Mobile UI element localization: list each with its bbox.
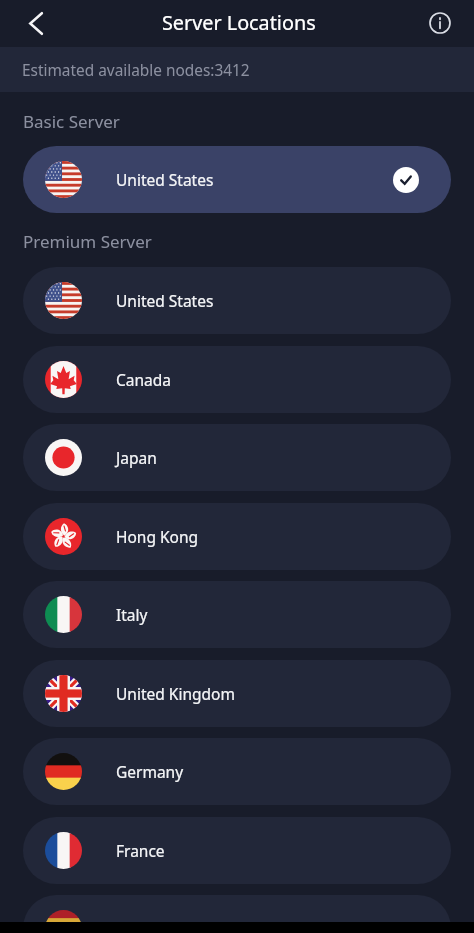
staticText: Server Locations (162, 9, 316, 36)
button[interactable]: Back (16, 3, 56, 43)
staticText: Spain (116, 918, 157, 933)
button[interactable]: France (23, 817, 451, 884)
staticText: Estimated available nodes:3412 (22, 60, 250, 81)
button[interactable]: Spain (23, 895, 451, 933)
button[interactable]: United States (23, 146, 451, 213)
button[interactable]: Japan (23, 424, 451, 491)
button[interactable]: United States (23, 267, 451, 334)
staticText: Premium Server (23, 230, 152, 253)
button[interactable]: Canada (23, 346, 451, 413)
button[interactable]: United Kingdom (23, 660, 451, 727)
staticText: Japan (116, 447, 157, 468)
staticText: United States (116, 169, 214, 190)
staticText: United States (116, 290, 214, 311)
button[interactable]: Info (423, 6, 457, 40)
button[interactable]: Hong Kong (23, 503, 451, 570)
staticText: Italy (116, 604, 148, 625)
staticText: United Kingdom (116, 683, 235, 704)
staticText: Hong Kong (116, 526, 199, 547)
staticText: France (116, 840, 165, 861)
staticText: Canada (116, 369, 171, 390)
button[interactable]: Germany (23, 738, 451, 805)
button[interactable]: Italy (23, 581, 451, 648)
staticText: Germany (116, 761, 184, 782)
staticText: Basic Server (23, 110, 120, 133)
